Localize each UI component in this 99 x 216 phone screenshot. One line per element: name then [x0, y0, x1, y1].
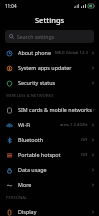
staticText: Display [18, 208, 37, 215]
staticText: Off [81, 137, 88, 143]
other: About phone [6, 50, 13, 57]
staticText: area-1 2.4GHz [60, 122, 88, 128]
other: More [6, 182, 13, 189]
button[interactable]: SIM cards [0, 102, 99, 117]
button[interactable]: Portable hotspot [0, 147, 99, 162]
button[interactable]: More [0, 177, 99, 192]
staticText: SIM cards & mobile networks [18, 106, 92, 113]
staticText: PERSONAL [6, 195, 28, 201]
staticText: Off [81, 152, 88, 158]
button[interactable]: Data usage [0, 162, 99, 177]
staticText: Bluetooth [18, 136, 44, 143]
button[interactable]: System apps updater [0, 60, 99, 75]
staticText: Settings [35, 15, 65, 25]
other: SIM cards [6, 107, 13, 114]
staticText: MIUI Global 12.3 [55, 50, 88, 56]
other: System apps updater [6, 65, 13, 72]
button[interactable]: Display [0, 204, 99, 216]
button[interactable]: Wi-Fi [0, 117, 99, 132]
staticText: Wi-Fi [18, 121, 31, 128]
other: Security status [6, 80, 13, 87]
staticText: Security status [18, 79, 56, 86]
staticText: WIRELESS & NETWORKS [6, 93, 54, 99]
other: Portable hotspot [6, 152, 13, 159]
other: Wi-Fi [6, 122, 13, 129]
staticText: More [18, 181, 32, 188]
staticText: Data usage [18, 166, 47, 173]
staticText: System apps updater [18, 64, 72, 71]
staticText: 11:04 [5, 3, 17, 9]
staticText: Search settings [17, 33, 55, 40]
staticText: About phone [18, 49, 51, 56]
other: Data usage [6, 167, 13, 174]
staticText: Portable hotspot [18, 151, 61, 158]
button[interactable]: Security status [0, 75, 99, 90]
button[interactable]: Search settings [5, 30, 94, 43]
button[interactable]: About phone [0, 45, 99, 60]
other: Bluetooth [6, 137, 13, 144]
other: Display [6, 209, 13, 216]
button[interactable]: Bluetooth [0, 132, 99, 147]
